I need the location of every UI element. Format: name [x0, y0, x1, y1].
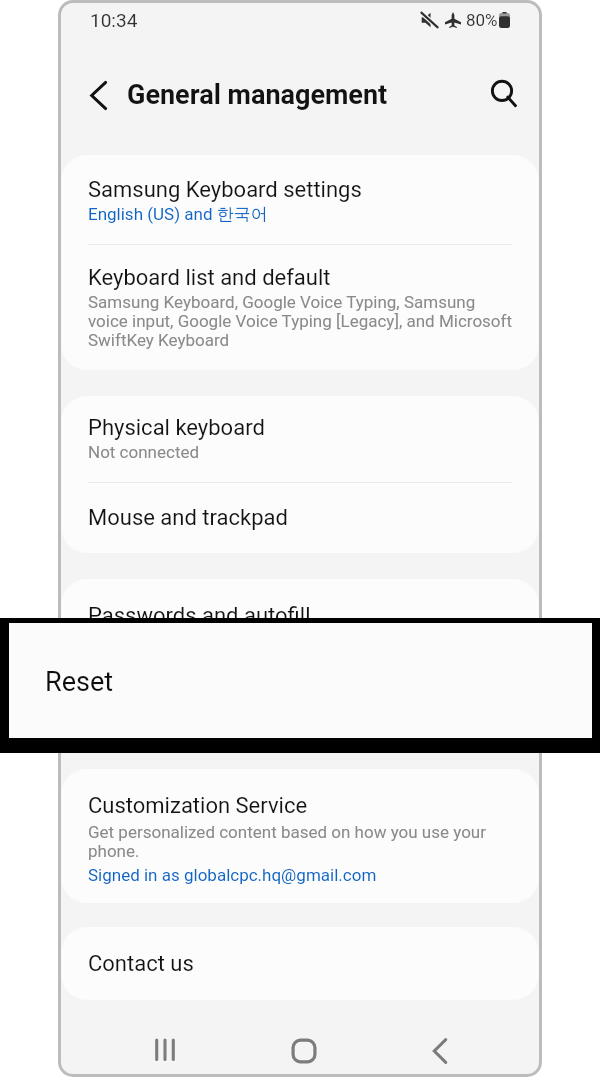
staticText: Contact us	[88, 951, 194, 977]
staticText: Keyboard list and default	[88, 265, 331, 291]
staticText: 10:34	[90, 9, 138, 31]
button[interactable]: Home	[276, 1023, 332, 1074]
button[interactable]: Recent apps	[137, 1023, 193, 1074]
button[interactable]: Back	[412, 1023, 468, 1074]
button[interactable]: Passwords and autofill	[61, 579, 539, 652]
staticText: Samsung Keyboard settings	[88, 177, 362, 203]
staticText: Date and time	[88, 674, 225, 700]
button[interactable]: Samsung Keyboard settings	[61, 155, 539, 244]
staticText: Samsung Keyboard, Google Voice Typing, S…	[88, 293, 516, 350]
button[interactable]: Physical keyboard	[61, 396, 539, 482]
staticText: Mouse and trackpad	[88, 505, 288, 531]
button[interactable]: Contact us	[61, 927, 539, 1000]
staticText: General management	[127, 79, 388, 111]
staticText: Physical keyboard	[88, 415, 265, 441]
button[interactable]: Search	[482, 72, 526, 116]
staticText: English (US) and 한국어	[88, 205, 268, 225]
button[interactable]: Keyboard list and default	[61, 245, 539, 370]
staticText: Signed in as globalcpc.hq@gmail.com	[88, 866, 377, 885]
button[interactable]: Mouse and trackpad	[61, 483, 539, 553]
button[interactable]: Customization Service	[61, 769, 539, 903]
staticText: Customization Service	[88, 793, 308, 819]
staticText: Passwords and autofill	[88, 603, 311, 629]
button[interactable]: Reset	[9, 623, 592, 738]
staticText: Not connected	[88, 443, 200, 462]
staticText: Reset	[45, 666, 114, 698]
staticText: 80%	[466, 10, 498, 30]
staticText: Get personalized content based on how yo…	[88, 823, 489, 861]
button[interactable]: Navigate up	[76, 73, 120, 117]
button[interactable]: Date and time	[61, 653, 539, 743]
